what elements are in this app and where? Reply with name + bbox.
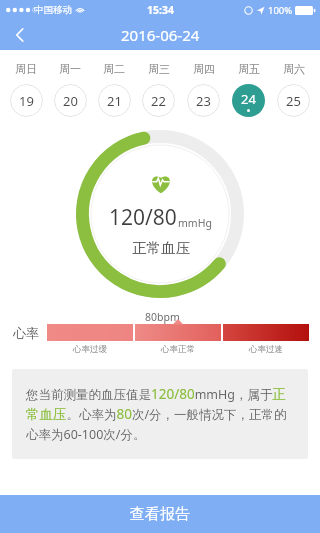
- staticText: 查看报告: [130, 505, 190, 524]
- staticText: 心率正常: [161, 344, 195, 355]
- staticText: 周二: [103, 62, 125, 76]
- button[interactable]: 查看报告: [0, 495, 320, 533]
- staticText: 21: [107, 92, 122, 110]
- staticText: 周五: [238, 62, 260, 76]
- button[interactable]: 23: [187, 84, 220, 117]
- button[interactable]: 20: [54, 84, 87, 117]
- staticText: 周六: [283, 62, 305, 76]
- staticText: 120/80: [109, 203, 177, 232]
- staticText: 19: [19, 92, 34, 110]
- button[interactable]: 19: [10, 84, 43, 117]
- staticText: 100%: [268, 4, 293, 17]
- staticText: 中国移动: [34, 4, 72, 16]
- staticText: 80bpm: [145, 310, 180, 324]
- staticText: 15:34: [147, 3, 174, 17]
- staticText: mmHg: [178, 216, 212, 230]
- staticText: 2016-06-24: [121, 25, 200, 45]
- staticText: 周三: [148, 62, 170, 76]
- button[interactable]: 22: [142, 84, 175, 117]
- staticText: 23: [196, 92, 211, 110]
- button[interactable]: 25: [277, 84, 310, 117]
- staticText: 您当前测量的血压值是120/80mmHg，属于正常血压。心率为80次/分，一般情…: [26, 385, 294, 443]
- button[interactable]: 24: [232, 84, 265, 117]
- staticText: 正常血压: [132, 239, 190, 257]
- staticText: 周日: [15, 62, 37, 76]
- staticText: 周四: [193, 62, 215, 76]
- button[interactable]: 21: [98, 84, 131, 117]
- staticText: 22: [151, 92, 166, 110]
- staticText: 心率: [13, 325, 39, 341]
- staticText: 心率过缓: [73, 344, 107, 355]
- staticText: 20: [63, 92, 78, 110]
- button[interactable]: Back: [0, 20, 40, 50]
- staticText: 心率过速: [249, 344, 283, 355]
- staticText: 周一: [59, 62, 81, 76]
- staticText: 24: [241, 90, 256, 108]
- staticText: 25: [286, 92, 301, 110]
